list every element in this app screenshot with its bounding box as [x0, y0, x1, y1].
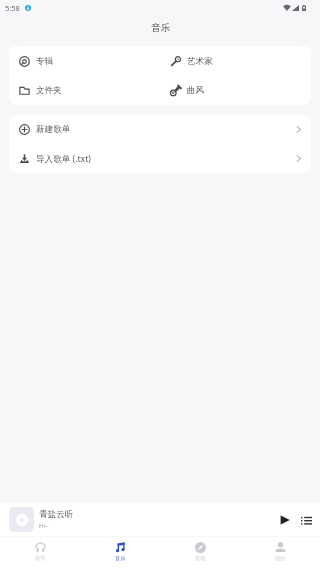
staticText: 听书 — [35, 555, 46, 562]
button[interactable]: 发现 — [160, 537, 240, 570]
button[interactable]: 专辑 — [9, 46, 160, 76]
staticText: 5:58 — [5, 3, 20, 13]
staticText: 音乐 — [115, 555, 126, 562]
button[interactable]: 曲风 — [160, 76, 311, 105]
staticText: 我的 — [275, 555, 286, 562]
button[interactable]: 导入歌单 (.txt) — [9, 144, 311, 173]
button[interactable]: 新建歌单 — [9, 115, 311, 144]
button[interactable]: 我的 — [240, 537, 320, 570]
staticText: 曲风 — [187, 85, 205, 96]
staticText: 新建歌单 — [36, 124, 71, 135]
button[interactable]: 音乐 — [80, 537, 160, 570]
button[interactable]: 听书 — [0, 537, 80, 570]
button[interactable]: Playlist — [296, 510, 316, 530]
staticText: 音乐 — [151, 22, 170, 34]
button[interactable]: Play — [275, 510, 295, 530]
staticText: 青盐云听 — [39, 509, 74, 520]
staticText: 导入歌单 (.txt) — [36, 153, 91, 165]
staticText: 专辑 — [36, 56, 54, 67]
staticText: 艺术家 — [187, 56, 213, 67]
staticText: 发现 — [195, 555, 206, 562]
button[interactable]: 文件夹 — [9, 76, 160, 105]
button[interactable]: 青盐云听 — [0, 503, 320, 536]
button[interactable]: 艺术家 — [160, 46, 311, 76]
staticText: Hi~ — [39, 522, 49, 530]
staticText: 文件夹 — [36, 85, 62, 96]
